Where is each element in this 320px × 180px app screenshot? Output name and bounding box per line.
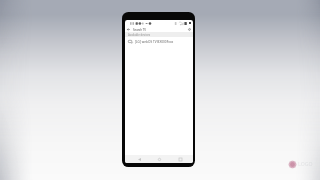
button[interactable]: [LG] webOS TV BX000Fxxx bbox=[125, 37, 193, 46]
staticText: Available devices bbox=[128, 33, 151, 37]
button[interactable]: Recent apps bbox=[173, 155, 187, 163]
button[interactable]: Back bbox=[132, 155, 146, 163]
button[interactable]: Navigate up bbox=[127, 27, 131, 32]
button[interactable]: Home bbox=[152, 155, 166, 163]
staticText: LOGO bbox=[298, 160, 313, 167]
button[interactable]: Refresh bbox=[187, 27, 191, 32]
staticText: Search TV bbox=[133, 28, 147, 32]
staticText: [LG] webOS TV BX000Fxxx bbox=[135, 40, 174, 44]
